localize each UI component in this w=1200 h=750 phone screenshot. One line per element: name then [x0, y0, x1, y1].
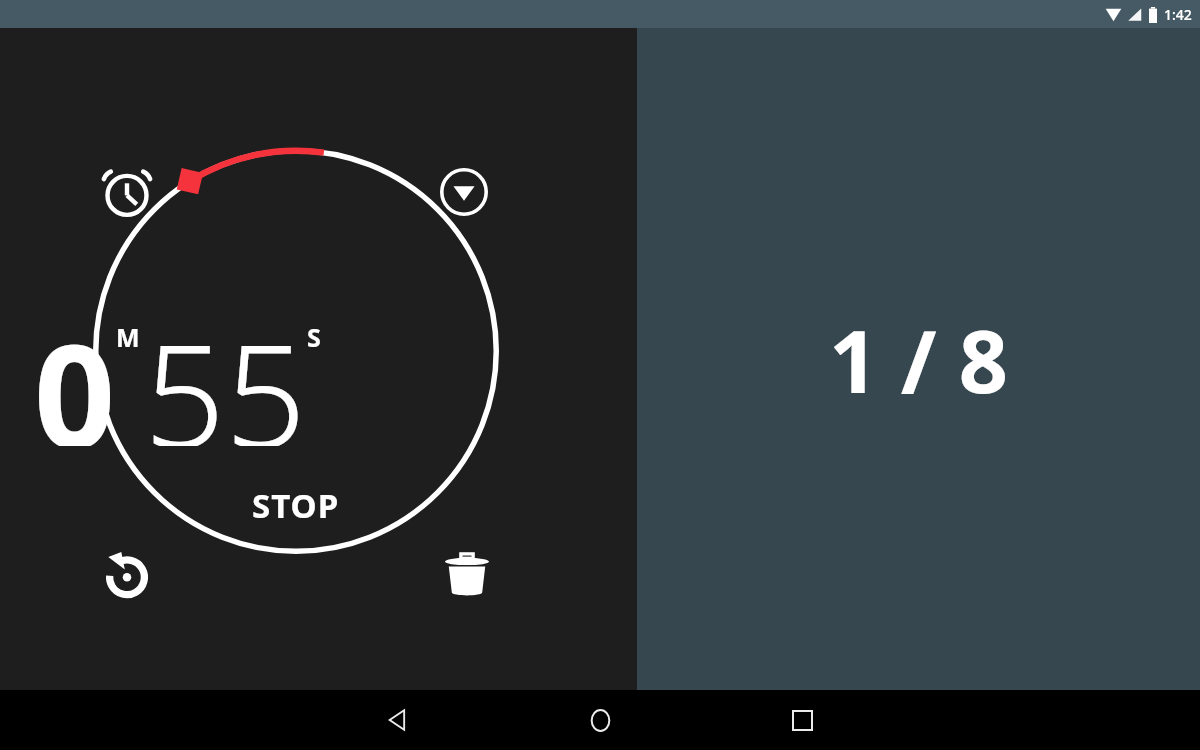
button[interactable]: STOP — [93, 483, 499, 528]
staticText: 0 — [34, 296, 116, 446]
staticText: S — [307, 320, 321, 354]
staticText: STOP — [252, 483, 340, 528]
staticText: 1 / 8 — [829, 301, 1008, 418]
button[interactable]: 1 / 8 — [637, 28, 1200, 690]
staticText: 1:42 — [1164, 5, 1192, 24]
button[interactable]: Reset timer — [88, 536, 166, 614]
button[interactable]: Home — [572, 692, 628, 748]
button[interactable]: Collapse timer — [428, 156, 500, 228]
button[interactable]: Recent apps — [774, 692, 830, 748]
staticText: 55 — [144, 296, 307, 446]
button[interactable]: Delete timer — [428, 536, 506, 614]
button[interactable]: 0 — [0, 296, 637, 446]
button[interactable]: Set alarm — [88, 153, 166, 231]
button[interactable]: Back — [370, 692, 426, 748]
staticText: M — [116, 320, 140, 354]
